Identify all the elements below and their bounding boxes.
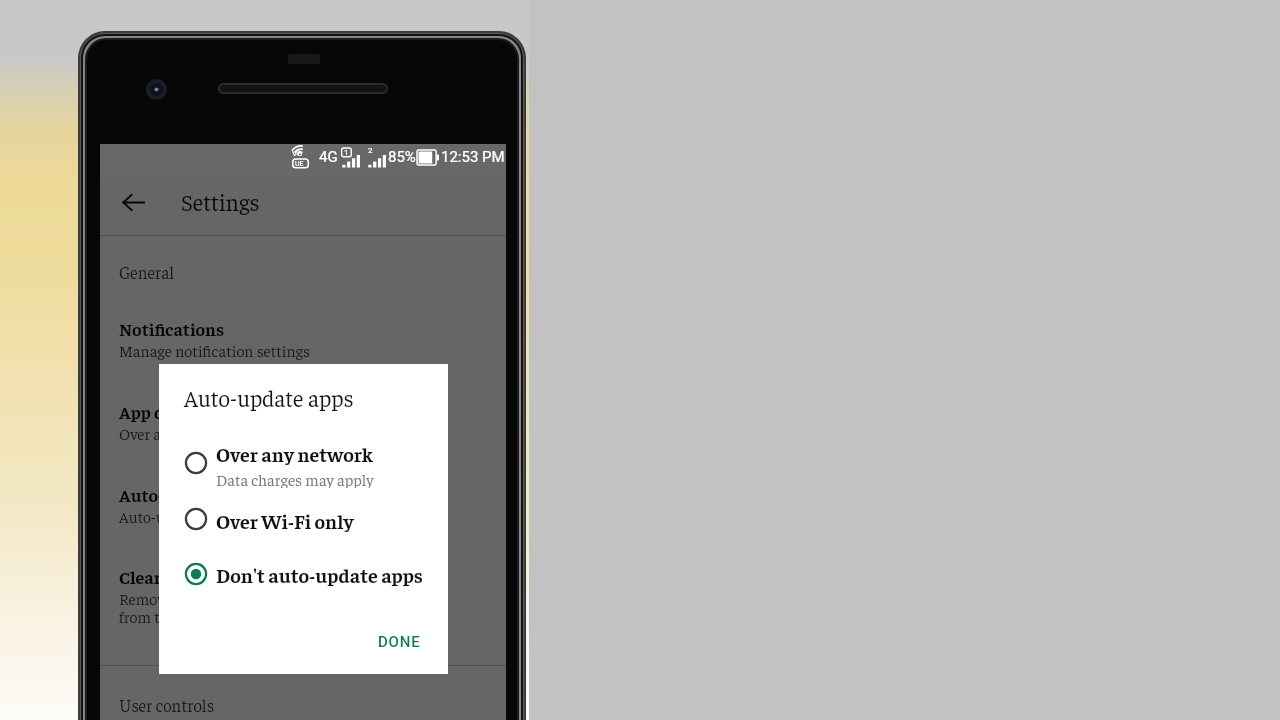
button[interactable]: DONE <box>364 623 435 661</box>
button[interactable]: Notifications <box>100 317 506 366</box>
staticText: Notifications <box>119 317 225 340</box>
staticText: Over Wi-Fi only <box>216 508 354 533</box>
staticText: App download preference <box>119 400 322 423</box>
staticText: 12:53 PM <box>441 148 505 166</box>
staticText: Over any network <box>216 441 374 466</box>
staticText: Don't auto-update apps <box>216 562 423 587</box>
staticText: 85% <box>388 148 416 166</box>
staticText: Auto-update apps at any time <box>119 506 315 526</box>
staticText: 1 <box>344 148 349 157</box>
button[interactable]: Over any network <box>159 441 448 485</box>
button[interactable]: Auto-update apps <box>100 483 506 532</box>
staticText: User controls <box>119 694 215 715</box>
staticText: DONE <box>378 633 421 651</box>
staticText: Clear local search history <box>119 565 319 588</box>
staticText: UE <box>295 160 304 168</box>
staticText: 4G <box>319 148 338 166</box>
staticText: Data charges may apply <box>216 469 374 488</box>
staticText: Auto-update apps <box>184 383 354 412</box>
staticText: Over any network <box>119 423 236 443</box>
button[interactable]: Back <box>113 182 153 222</box>
button[interactable]: Over Wi-Fi only <box>159 497 448 541</box>
staticText: Settings <box>181 187 260 216</box>
staticText: Auto-update apps <box>119 483 261 506</box>
staticText: 2 <box>368 146 373 155</box>
button[interactable]: Clear local search history <box>100 565 506 632</box>
button[interactable]: App download preference <box>100 400 506 449</box>
staticText: VO <box>292 149 303 158</box>
staticText: Manage notification settings <box>119 340 311 360</box>
staticText: Remove all the searches you have perform… <box>119 588 411 626</box>
staticText: General <box>119 261 175 282</box>
button[interactable]: Don't auto-update apps <box>159 552 448 596</box>
